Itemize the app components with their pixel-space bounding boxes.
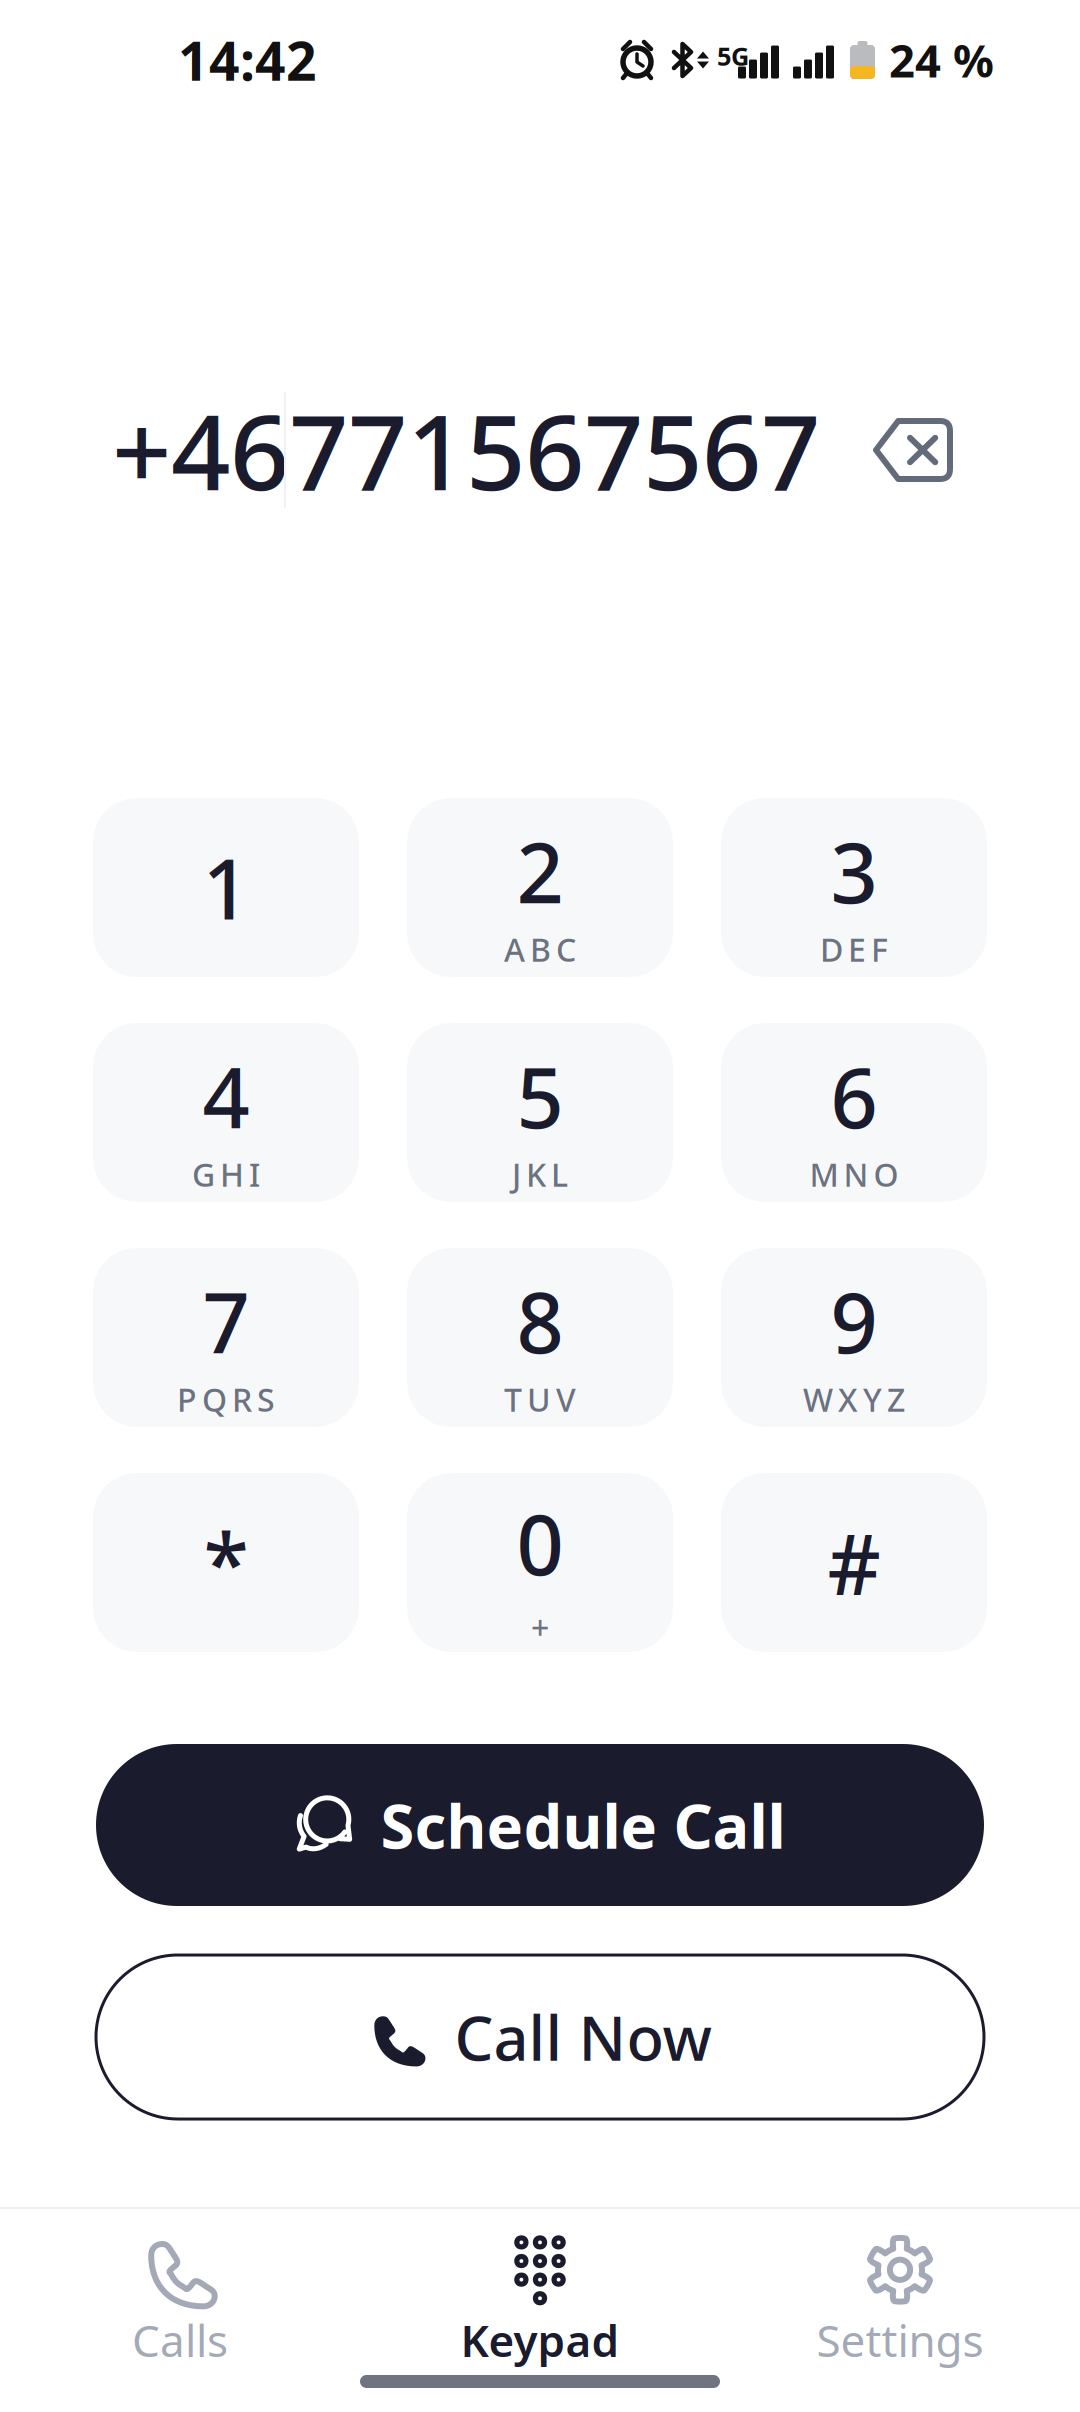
staticText: * (203, 1508, 248, 1617)
staticText: 14:42 (178, 25, 317, 95)
staticText: 8 (516, 1266, 563, 1376)
button[interactable]: Backspace (858, 395, 968, 505)
button[interactable]: Settings (720, 2209, 1080, 2359)
button[interactable]: * (93, 1473, 359, 1652)
staticText: D E F (820, 928, 888, 971)
staticText: Calls (132, 2311, 228, 2369)
staticText: M N O (809, 1153, 898, 1196)
staticText: W X Y Z (803, 1378, 905, 1421)
button[interactable]: Call Now (96, 1955, 984, 2119)
staticText: Schedule Call (380, 1784, 785, 1866)
staticText: 9 (830, 1266, 877, 1376)
staticText: J K L (512, 1153, 568, 1196)
staticText: 24 % (889, 30, 994, 90)
button[interactable]: 8 (407, 1248, 673, 1427)
button[interactable]: 4 (93, 1023, 359, 1202)
staticText: Keypad (460, 2311, 619, 2369)
button[interactable]: 5 (407, 1023, 673, 1202)
staticText: Settings (816, 2311, 983, 2369)
staticText: G H I (192, 1153, 260, 1196)
staticText: 5G (717, 39, 749, 73)
staticText: 5 (516, 1041, 563, 1151)
button[interactable]: Keypad (360, 2209, 720, 2359)
staticText: 1 (202, 833, 249, 942)
button[interactable]: 2 (407, 798, 673, 977)
button[interactable]: # (721, 1473, 987, 1652)
button[interactable]: Calls (0, 2209, 360, 2359)
staticText: Call Now (454, 1996, 711, 2078)
staticText: P Q R S (177, 1378, 275, 1421)
staticText: 4 (202, 1041, 249, 1151)
button[interactable]: 6 (721, 1023, 987, 1202)
button[interactable]: 0 (407, 1473, 673, 1652)
staticText: 2 (516, 816, 563, 926)
button[interactable]: 7 (93, 1248, 359, 1427)
button[interactable]: 3 (721, 798, 987, 977)
staticText: 6 (830, 1041, 877, 1151)
staticText: 7 (202, 1266, 249, 1376)
staticText: 3 (830, 816, 877, 926)
staticText: + (531, 1606, 549, 1649)
staticText: T U V (504, 1378, 576, 1421)
staticText: # (827, 1508, 880, 1617)
staticText: 0 (516, 1488, 563, 1598)
button[interactable]: 9 (721, 1248, 987, 1427)
staticText: A B C (504, 928, 576, 971)
staticText: +46771567567 (112, 381, 820, 519)
button[interactable]: 1 (93, 798, 359, 977)
button[interactable]: Schedule Call (96, 1744, 984, 1906)
